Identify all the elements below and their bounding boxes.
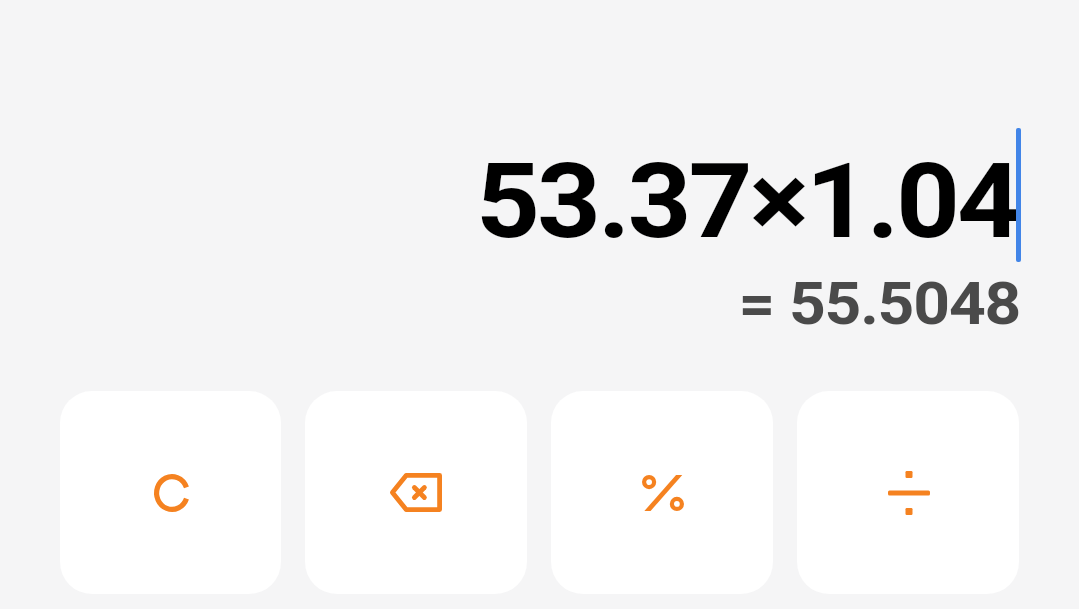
button[interactable]: Percent [551,391,773,594]
button[interactable]: Backspace [305,391,527,594]
staticText: 53.37×1.04 [0,140,1018,262]
button[interactable]: Divide [797,391,1019,594]
staticText: = 55.5048 [0,269,1020,338]
button[interactable]: Clear [60,391,281,594]
